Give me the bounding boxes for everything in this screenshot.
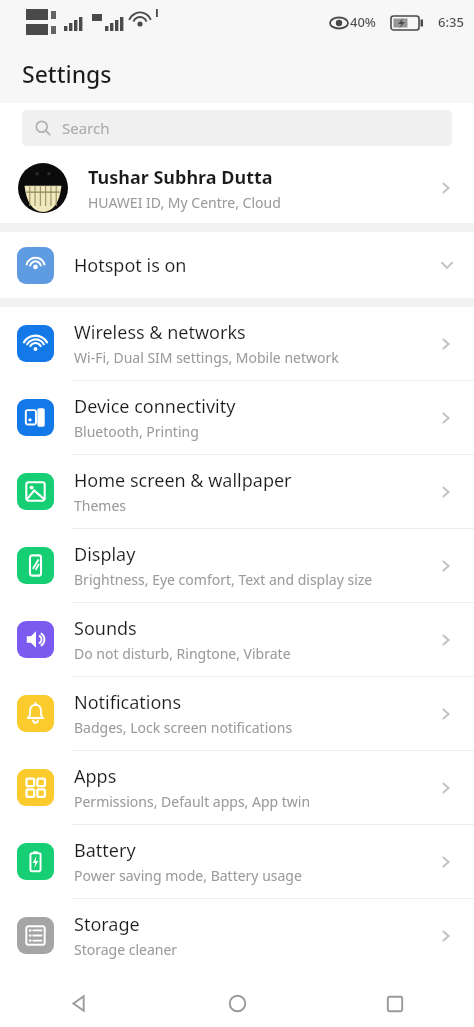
staticText: Tushar Subhra Dutta [88,165,273,190]
staticText: Sounds [74,616,137,641]
button[interactable]: Device connectivity [0,381,474,454]
staticText: Apps [74,764,117,789]
staticText: Wi-Fi, Dual SIM settings, Mobile network [74,348,339,367]
staticText: Permissions, Default apps, App twin [74,792,311,811]
button[interactable]: Notifications [0,677,474,750]
staticText: Search [62,118,110,138]
staticText: Do not disturb, Ringtone, Vibrate [74,644,291,663]
button[interactable]: Hotspot is on [0,232,474,298]
button[interactable]: Tushar Subhra Dutta [0,153,474,223]
staticText: Storage [74,912,140,937]
staticText: Themes [74,496,127,515]
staticText: Notifications [74,690,182,715]
button[interactable]: Home [158,980,316,1027]
staticText: Brightness, Eye comfort, Text and displa… [74,570,373,589]
button[interactable]: Battery [0,825,474,898]
button[interactable]: Display [0,529,474,602]
button[interactable]: Wireless & networks [0,307,474,380]
button[interactable]: Apps [0,751,474,824]
staticText: Bluetooth, Printing [74,422,199,441]
staticText: Badges, Lock screen notifications [74,718,293,737]
staticText: Device connectivity [74,394,236,419]
button[interactable]: Home screen & wallpaper [0,455,474,528]
staticText: 40% [350,13,376,31]
button[interactable]: Search [22,110,452,146]
staticText: 6:35 [438,13,464,31]
staticText: HUAWEI ID, My Centre, Cloud [88,193,281,212]
button[interactable]: Sounds [0,603,474,676]
staticText: Display [74,542,136,567]
button[interactable]: Storage [0,899,474,972]
staticText: Wireless & networks [74,320,246,345]
staticText: Storage cleaner [74,940,178,959]
staticText: Hotspot is on [74,253,438,278]
staticText: Home screen & wallpaper [74,468,292,493]
staticText: Settings [22,58,112,89]
staticText: Battery [74,838,136,863]
button[interactable]: Recent apps [316,980,474,1027]
button[interactable]: Back [0,980,158,1027]
staticText: Power saving mode, Battery usage [74,866,302,885]
